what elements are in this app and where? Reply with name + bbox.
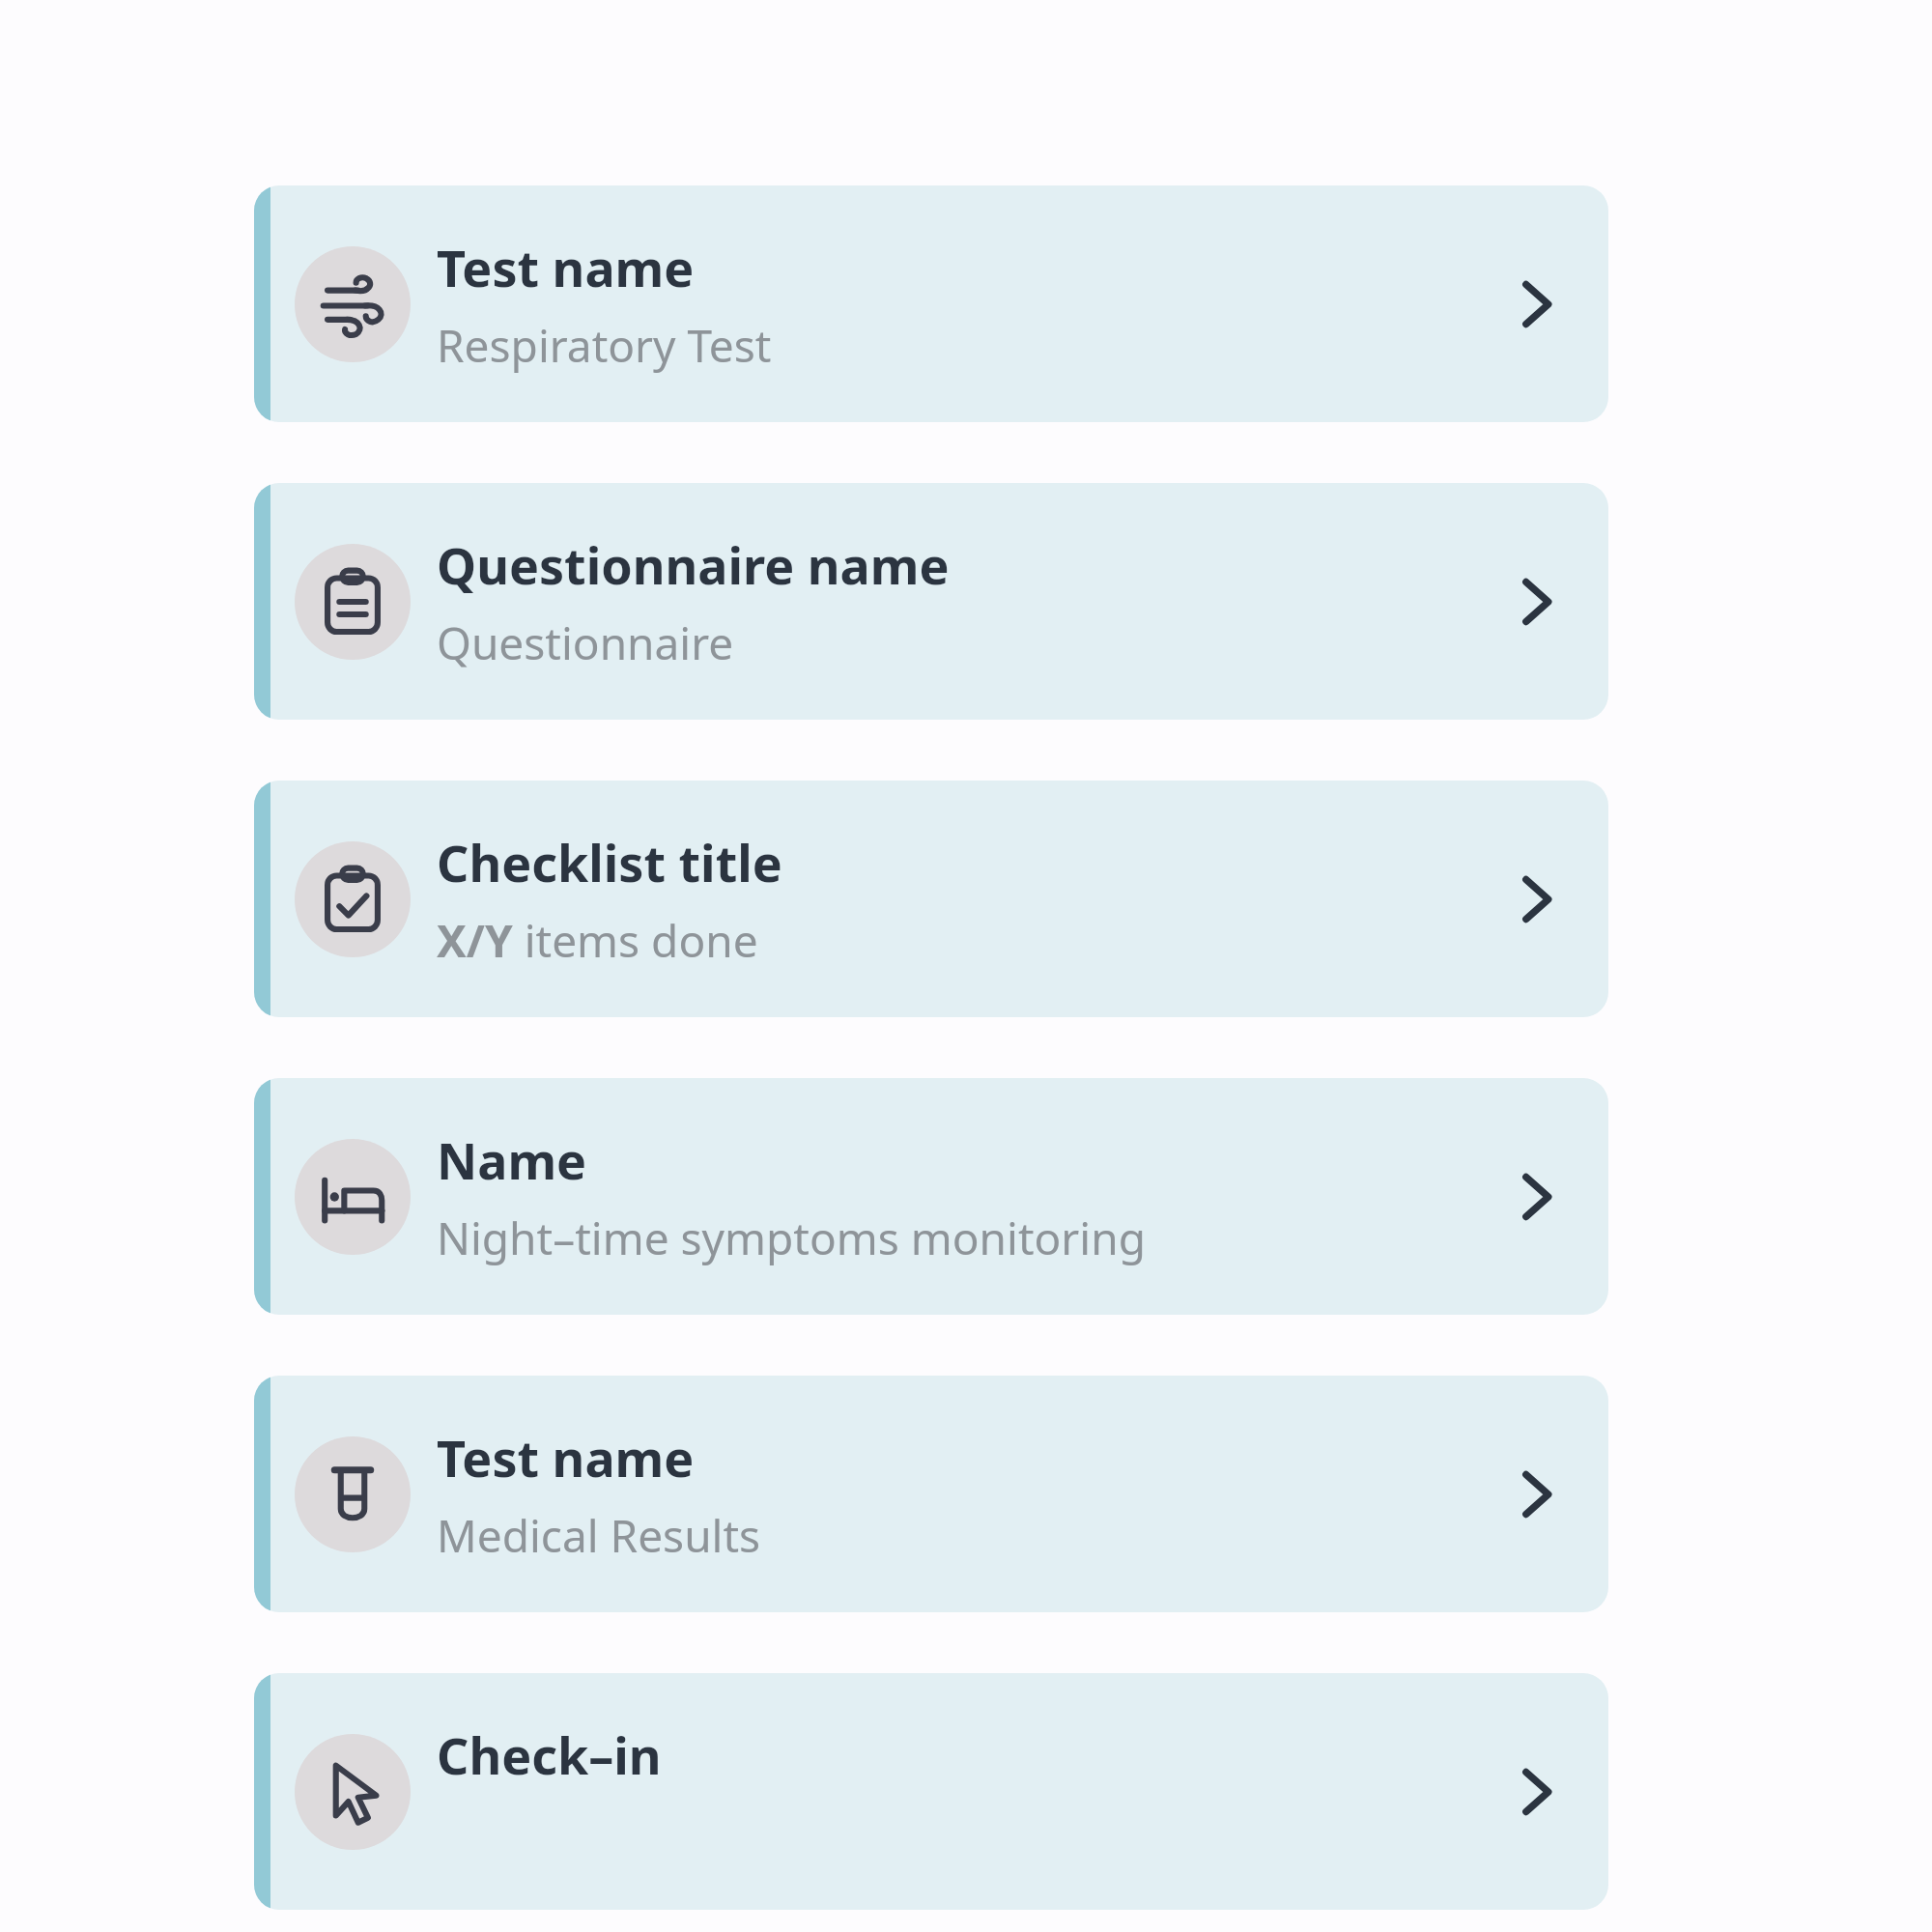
staticText: Medical Results: [437, 1505, 761, 1566]
staticText: Respiratory Test: [437, 315, 772, 376]
button[interactable]: Check–in: [254, 1673, 1608, 1910]
button[interactable]: Open Check–in: [1463, 1673, 1608, 1910]
button[interactable]: Open Name: [1463, 1078, 1608, 1315]
button[interactable]: Open Test name: [1463, 1376, 1608, 1612]
button[interactable]: Open Checklist title: [1463, 781, 1608, 1017]
button[interactable]: Open Questionnaire name: [1463, 483, 1608, 720]
staticText: Check–in: [437, 1720, 662, 1789]
button[interactable]: Test name: [254, 185, 1608, 422]
button[interactable]: Test name: [254, 1376, 1608, 1612]
staticText: Test name: [437, 233, 695, 301]
button[interactable]: Checklist title: [254, 781, 1608, 1017]
staticText: Checklist title: [437, 828, 782, 896]
staticText: Name: [437, 1125, 587, 1194]
staticText: Test name: [437, 1423, 695, 1492]
button[interactable]: Questionnaire name: [254, 483, 1608, 720]
button[interactable]: Open Test name: [1463, 185, 1608, 422]
staticText: X/Y items done: [437, 910, 758, 971]
staticText: Questionnaire: [437, 612, 734, 673]
staticText: Night–time symptoms monitoring: [437, 1207, 1146, 1268]
button[interactable]: Name: [254, 1078, 1608, 1315]
staticText: Questionnaire name: [437, 530, 950, 599]
